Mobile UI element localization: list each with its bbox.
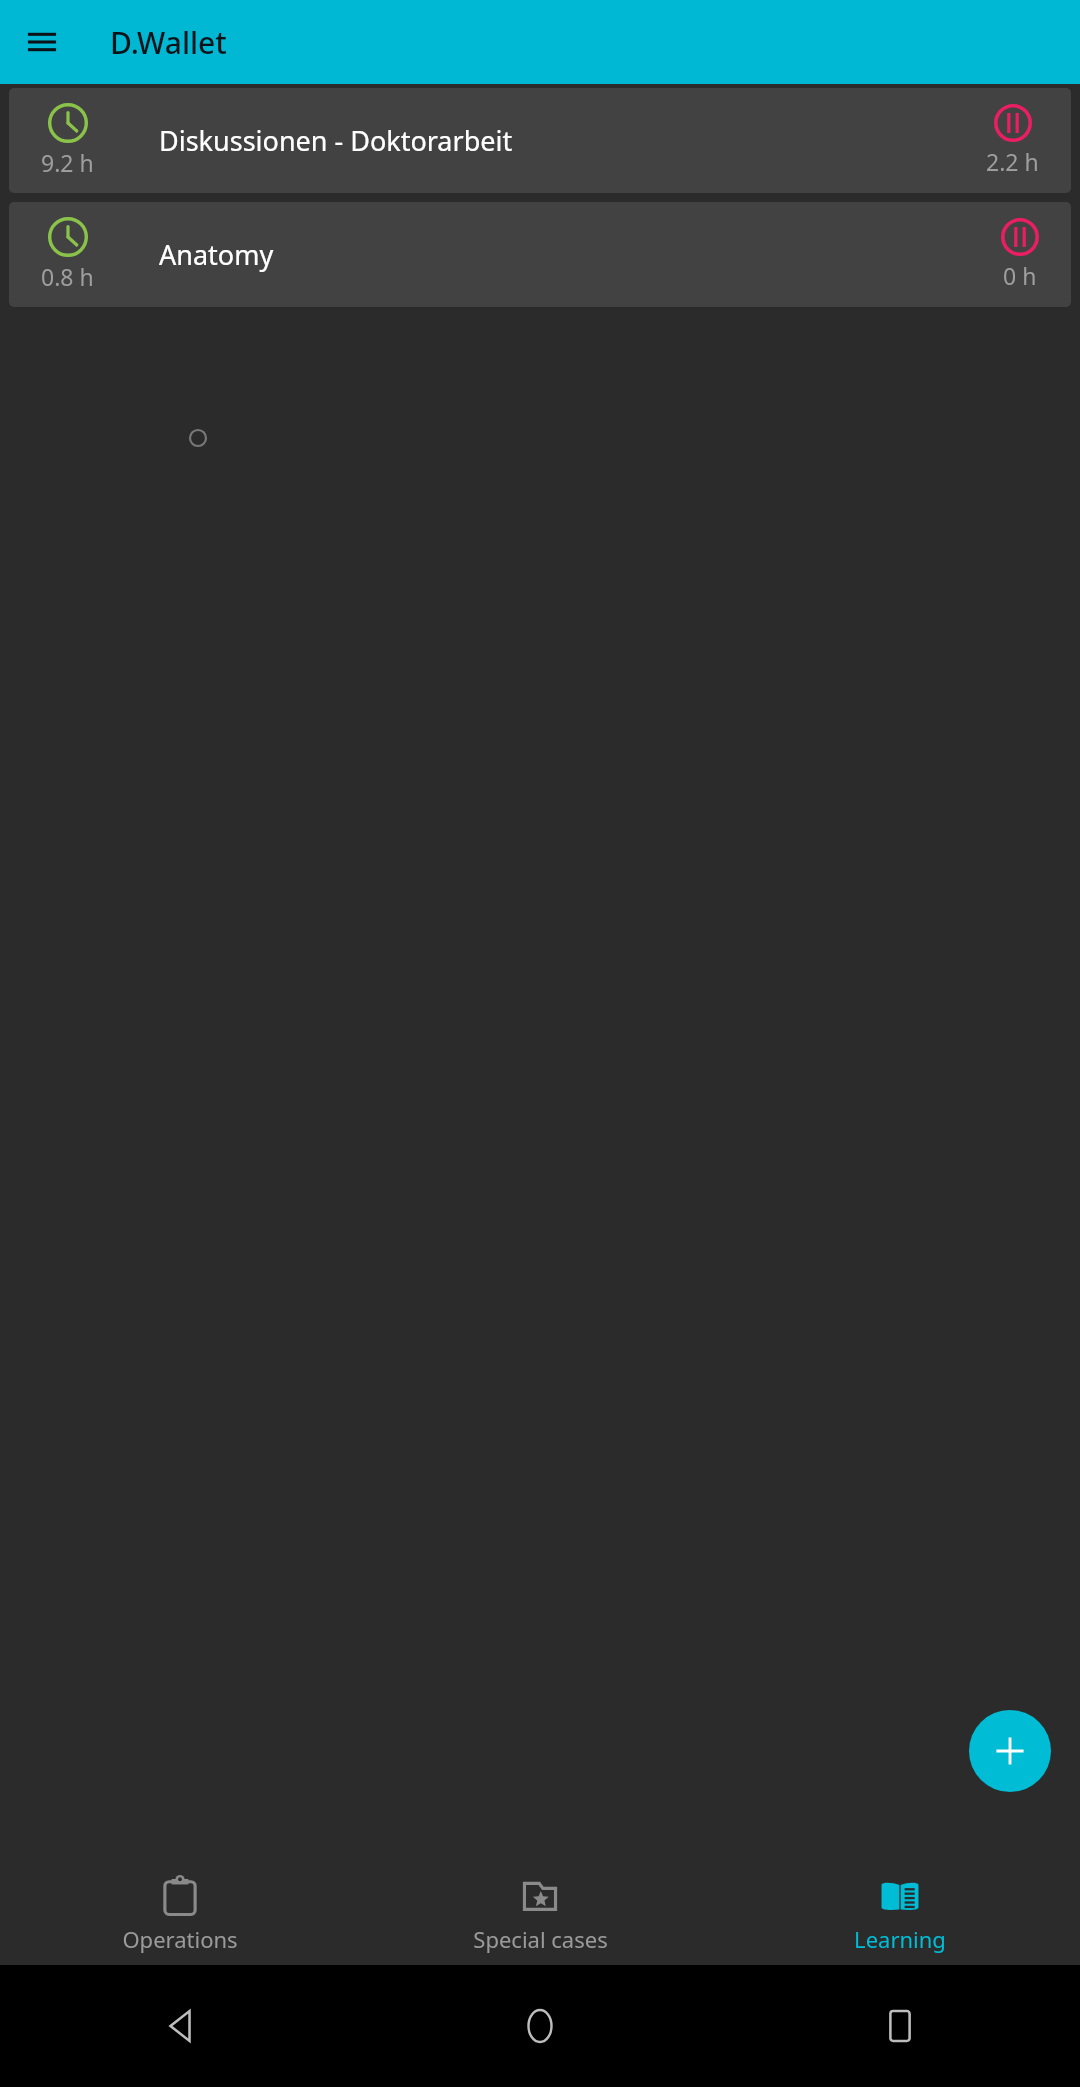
button[interactable]: Add [969, 1710, 1051, 1792]
button[interactable]: Back [145, 1991, 215, 2061]
button[interactable]: Learning [720, 1869, 1080, 1954]
staticText: 9.2 h [41, 147, 94, 178]
staticText: Anatomy [159, 236, 274, 273]
button[interactable]: Home [505, 1991, 575, 2061]
staticText: 0 h [1003, 260, 1037, 291]
button[interactable]: 9.2 h [9, 88, 1071, 193]
staticText: 0.8 h [41, 261, 94, 292]
staticText: Operations [122, 1924, 238, 1954]
staticText: D.Wallet [110, 22, 227, 63]
button[interactable]: Open navigation menu [10, 10, 74, 74]
button[interactable]: Recent apps [865, 1991, 935, 2061]
staticText: Diskussionen - Doktorarbeit [159, 122, 513, 159]
button[interactable]: Operations [0, 1869, 360, 1954]
staticText: Learning [854, 1924, 946, 1954]
button[interactable]: Special cases [360, 1869, 720, 1954]
staticText: 2.2 h [986, 146, 1039, 177]
button[interactable]: 0.8 h [9, 202, 1071, 307]
staticText: Special cases [473, 1924, 608, 1954]
